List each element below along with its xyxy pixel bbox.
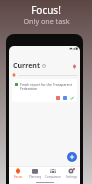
staticText: Companion	[45, 175, 61, 179]
button[interactable]: Streak	[71, 63, 77, 69]
button[interactable]: Finish report for the Transparent Federa…	[12, 79, 77, 102]
button[interactable]: Settings	[62, 168, 80, 179]
button[interactable]: Add task	[67, 152, 77, 162]
staticText: Planning	[29, 175, 41, 179]
staticText: Focus!	[31, 3, 61, 17]
staticText: Settings	[66, 175, 77, 179]
button[interactable]: Planning	[26, 168, 44, 179]
staticText: Focus	[14, 175, 22, 179]
button[interactable]: Companion	[44, 168, 62, 179]
button[interactable]: Delete	[55, 95, 60, 100]
button[interactable]: Edit	[62, 95, 67, 100]
button[interactable]: Focus	[9, 168, 26, 179]
button[interactable]: Done	[69, 95, 74, 100]
staticText: Only one task	[23, 16, 70, 26]
staticText: Current	[13, 61, 40, 71]
staticText: Finish report for the Transparent Federa…	[20, 82, 72, 91]
